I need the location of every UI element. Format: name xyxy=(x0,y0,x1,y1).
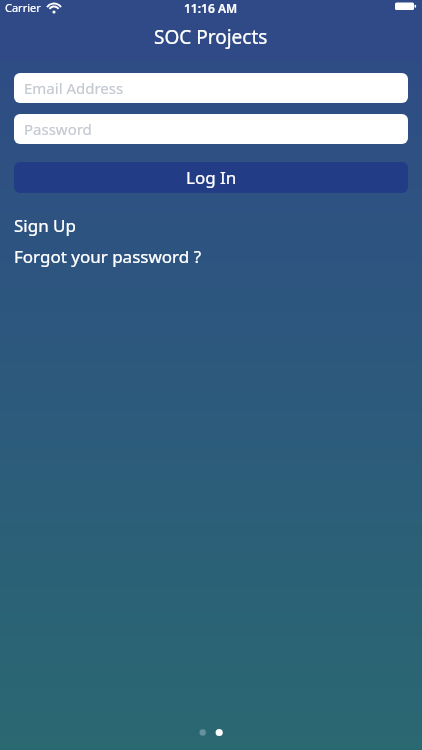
staticText: Log In xyxy=(186,166,237,189)
button[interactable]: Log In xyxy=(14,162,408,193)
button[interactable]: Sign Up xyxy=(0,211,90,240)
staticText: Carrier xyxy=(5,0,41,15)
staticText: Sign Up xyxy=(14,214,76,237)
staticText: SOC Projects xyxy=(154,24,268,50)
button[interactable]: Email Address xyxy=(14,73,408,103)
button[interactable]: Password xyxy=(14,114,408,144)
staticText: Email Address xyxy=(24,78,124,98)
staticText: Password xyxy=(24,119,92,139)
staticText: Forgot your password ? xyxy=(14,245,202,268)
button[interactable]: Forgot your password ? xyxy=(0,242,216,271)
staticText: 11:16 AM xyxy=(184,0,238,16)
